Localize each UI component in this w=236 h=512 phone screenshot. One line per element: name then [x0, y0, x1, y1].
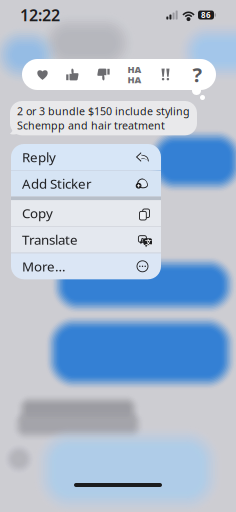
staticText: ?	[192, 61, 202, 88]
staticText: 12:22	[20, 4, 60, 26]
staticText: Add Sticker	[22, 175, 92, 192]
button[interactable]: More…	[11, 253, 161, 279]
button[interactable]: Add Sticker	[11, 171, 161, 197]
staticText: HA	[127, 73, 141, 86]
staticText: 2 or 3 bundle $150 include styling	[17, 104, 190, 118]
staticText: Translate	[22, 231, 78, 248]
button[interactable]: Translate	[11, 227, 161, 253]
staticText: Schempp and hair treatment	[17, 118, 165, 132]
staticText: 文	[145, 238, 152, 246]
staticText: 86	[201, 10, 211, 20]
staticText: More…	[22, 257, 66, 275]
button[interactable]: Exclamation	[0, 0, 31, 31]
button[interactable]: Copy	[11, 200, 161, 226]
staticText: A	[140, 236, 145, 244]
staticText: HA	[127, 63, 141, 75]
staticText: Copy	[22, 204, 53, 222]
button[interactable]: Love	[0, 0, 31, 31]
button[interactable]: Like	[0, 0, 31, 31]
button[interactable]: Dislike	[0, 0, 31, 31]
staticText: Reply	[22, 148, 56, 166]
button[interactable]: Question	[0, 0, 31, 31]
button[interactable]: Haha	[0, 0, 31, 31]
button[interactable]: Reply	[11, 144, 161, 170]
